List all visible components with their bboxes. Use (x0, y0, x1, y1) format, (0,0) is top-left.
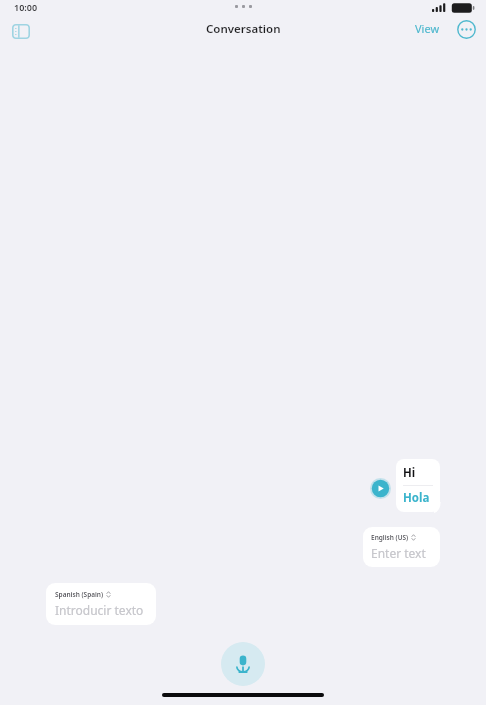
staticText: Enter text (371, 545, 426, 561)
staticText: 10:00 (14, 1, 38, 13)
button[interactable]: View (411, 18, 444, 39)
staticText: View (415, 21, 440, 36)
button[interactable]: Hi (396, 459, 440, 512)
staticText: Spanish (Spain) (55, 590, 104, 599)
staticText: Conversation (206, 21, 281, 37)
staticText: Hola (403, 490, 430, 506)
staticText: Hi (403, 465, 416, 481)
button[interactable]: Play translation (369, 477, 392, 500)
button[interactable]: Toggle sidebar (8, 18, 34, 44)
button[interactable]: More options (454, 17, 478, 41)
button[interactable]: English (US) (363, 527, 440, 567)
staticText: English (US) (371, 533, 409, 542)
staticText: Introducir texto (55, 602, 144, 618)
button[interactable]: Spanish (Spain) (46, 583, 156, 625)
button[interactable]: Record speech (221, 642, 265, 686)
